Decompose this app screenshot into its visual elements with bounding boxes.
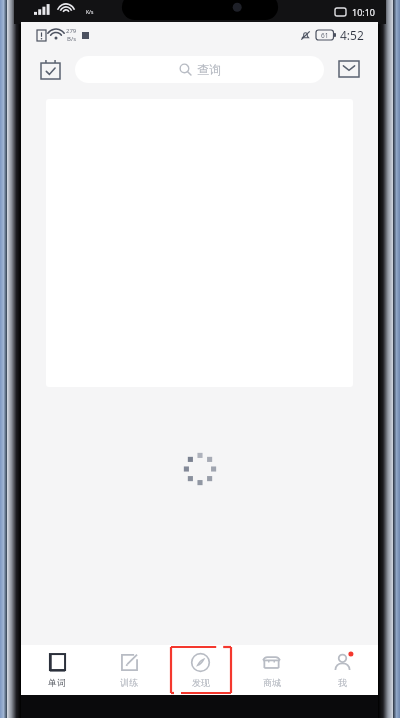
button[interactable]: Messages	[334, 54, 364, 84]
staticText: 10:10	[352, 6, 376, 18]
button[interactable]: 商城	[236, 645, 307, 695]
staticText: 279	[66, 27, 77, 35]
button[interactable]: 我	[307, 645, 378, 695]
staticText: K/s	[86, 9, 94, 16]
staticText: 查询	[197, 62, 221, 77]
staticText: 训练	[120, 677, 138, 688]
staticText: 4:52	[340, 27, 364, 43]
staticText: 商城	[263, 677, 281, 688]
staticText: B/s	[67, 35, 77, 43]
button[interactable]: 单词	[21, 645, 93, 695]
button[interactable]: 发现	[165, 645, 236, 695]
button[interactable]: 查询	[75, 56, 324, 83]
staticText: 单词	[48, 677, 66, 688]
staticText: 发现	[192, 677, 210, 688]
staticText: 我	[338, 677, 347, 688]
button[interactable]: Check in calendar	[35, 54, 65, 84]
staticText: 61	[321, 31, 329, 40]
button[interactable]: 训练	[93, 645, 165, 695]
